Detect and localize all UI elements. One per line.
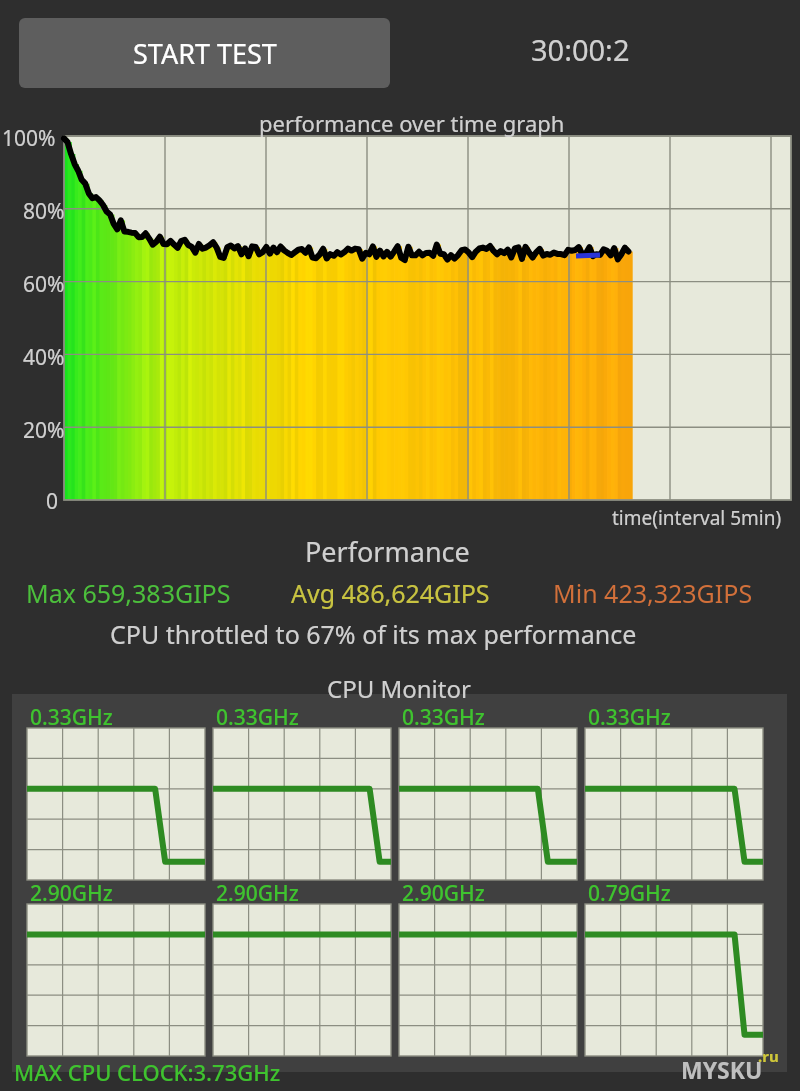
staticText: Avg 486,624GIPS <box>291 576 490 610</box>
staticText: Max 659,383GIPS <box>26 576 231 610</box>
staticText: MAX CPU CLOCK:3.73GHz <box>14 1057 281 1087</box>
staticText: 30:00:2 <box>531 30 630 69</box>
staticText: MYSKU <box>681 1054 763 1085</box>
staticText: 0.33GHz <box>30 703 113 732</box>
staticText: 0.33GHz <box>588 703 671 732</box>
staticText: START TEST <box>133 35 277 72</box>
staticText: Performance <box>305 533 470 570</box>
staticText: 60% <box>23 270 65 299</box>
staticText: 0.33GHz <box>216 703 299 732</box>
staticText: 2.90GHz <box>216 879 299 908</box>
staticText: 0.79GHz <box>588 879 671 908</box>
staticText: 2.90GHz <box>30 879 113 908</box>
staticText: 0 <box>46 487 59 516</box>
button[interactable]: START TEST <box>19 18 390 88</box>
staticText: 20% <box>23 416 65 445</box>
staticText: 0.33GHz <box>402 703 485 732</box>
staticText: 100% <box>2 124 56 153</box>
staticText: time(interval 5min) <box>612 505 782 531</box>
staticText: .ru <box>758 1046 779 1066</box>
staticText: performance over time graph <box>259 108 565 138</box>
staticText: 40% <box>23 343 65 372</box>
staticText: CPU throttled to 67% of its max performa… <box>110 617 637 651</box>
staticText: CPU Monitor <box>327 672 471 705</box>
staticText: Min 423,323GIPS <box>553 576 753 610</box>
staticText: 2.90GHz <box>402 879 485 908</box>
staticText: 80% <box>23 197 65 226</box>
